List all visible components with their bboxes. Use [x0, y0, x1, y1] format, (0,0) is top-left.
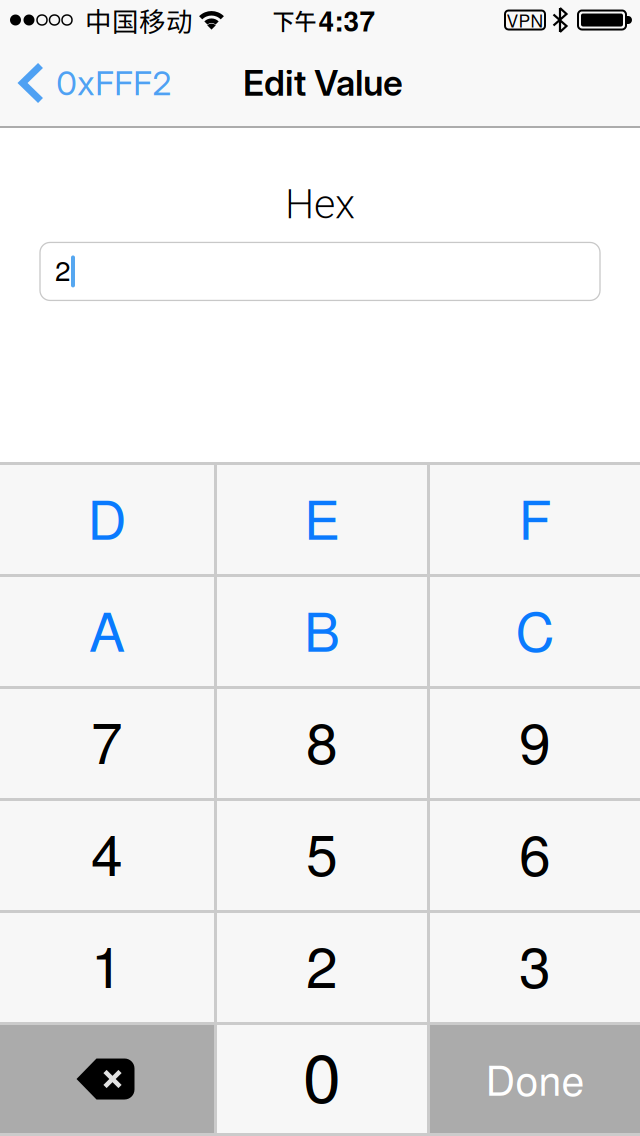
- button[interactable]: Hex value field: [40, 242, 600, 300]
- staticText: 0: [303, 1025, 341, 1122]
- staticText: 6: [519, 811, 551, 892]
- staticText: 0xFFF2: [56, 62, 172, 103]
- staticText: 4:37: [318, 0, 375, 40]
- button[interactable]: Back: [0, 62, 172, 104]
- staticText: 下午: [272, 4, 316, 36]
- staticText: Edit Value: [243, 62, 403, 104]
- button[interactable]: E: [217, 465, 427, 574]
- staticText: 5: [306, 811, 338, 892]
- staticText: 2: [55, 249, 71, 289]
- staticText: F: [518, 478, 551, 555]
- staticText: 3: [519, 923, 551, 1004]
- button[interactable]: 3: [430, 913, 640, 1022]
- button[interactable]: Done: [430, 1025, 640, 1133]
- staticText: Hex: [285, 180, 355, 228]
- staticText: A: [89, 590, 125, 667]
- staticText: Done: [485, 1049, 584, 1107]
- button[interactable]: B: [217, 577, 427, 686]
- button[interactable]: 5: [217, 801, 427, 910]
- staticText: 9: [519, 699, 551, 780]
- button[interactable]: C: [430, 577, 640, 686]
- staticText: 4: [91, 811, 123, 892]
- button[interactable]: 9: [430, 689, 640, 798]
- button[interactable]: 1: [0, 913, 214, 1022]
- staticText: E: [304, 478, 340, 555]
- staticText: 1: [91, 923, 123, 1004]
- button[interactable]: 8: [217, 689, 427, 798]
- button[interactable]: 2: [217, 913, 427, 1022]
- staticText: 中国移动: [85, 1, 193, 39]
- staticText: B: [304, 590, 340, 667]
- staticText: 8: [306, 699, 338, 780]
- button[interactable]: 0: [217, 1025, 427, 1133]
- staticText: C: [515, 590, 554, 667]
- staticText: D: [87, 478, 126, 555]
- button[interactable]: 4: [0, 801, 214, 910]
- staticText: 2: [306, 923, 338, 1004]
- button[interactable]: Delete: [0, 1025, 214, 1133]
- staticText: VPN: [506, 7, 543, 33]
- staticText: 7: [91, 699, 123, 780]
- button[interactable]: A: [0, 577, 214, 686]
- button[interactable]: D: [0, 465, 214, 574]
- button[interactable]: 7: [0, 689, 214, 798]
- button[interactable]: 6: [430, 801, 640, 910]
- button[interactable]: F: [430, 465, 640, 574]
